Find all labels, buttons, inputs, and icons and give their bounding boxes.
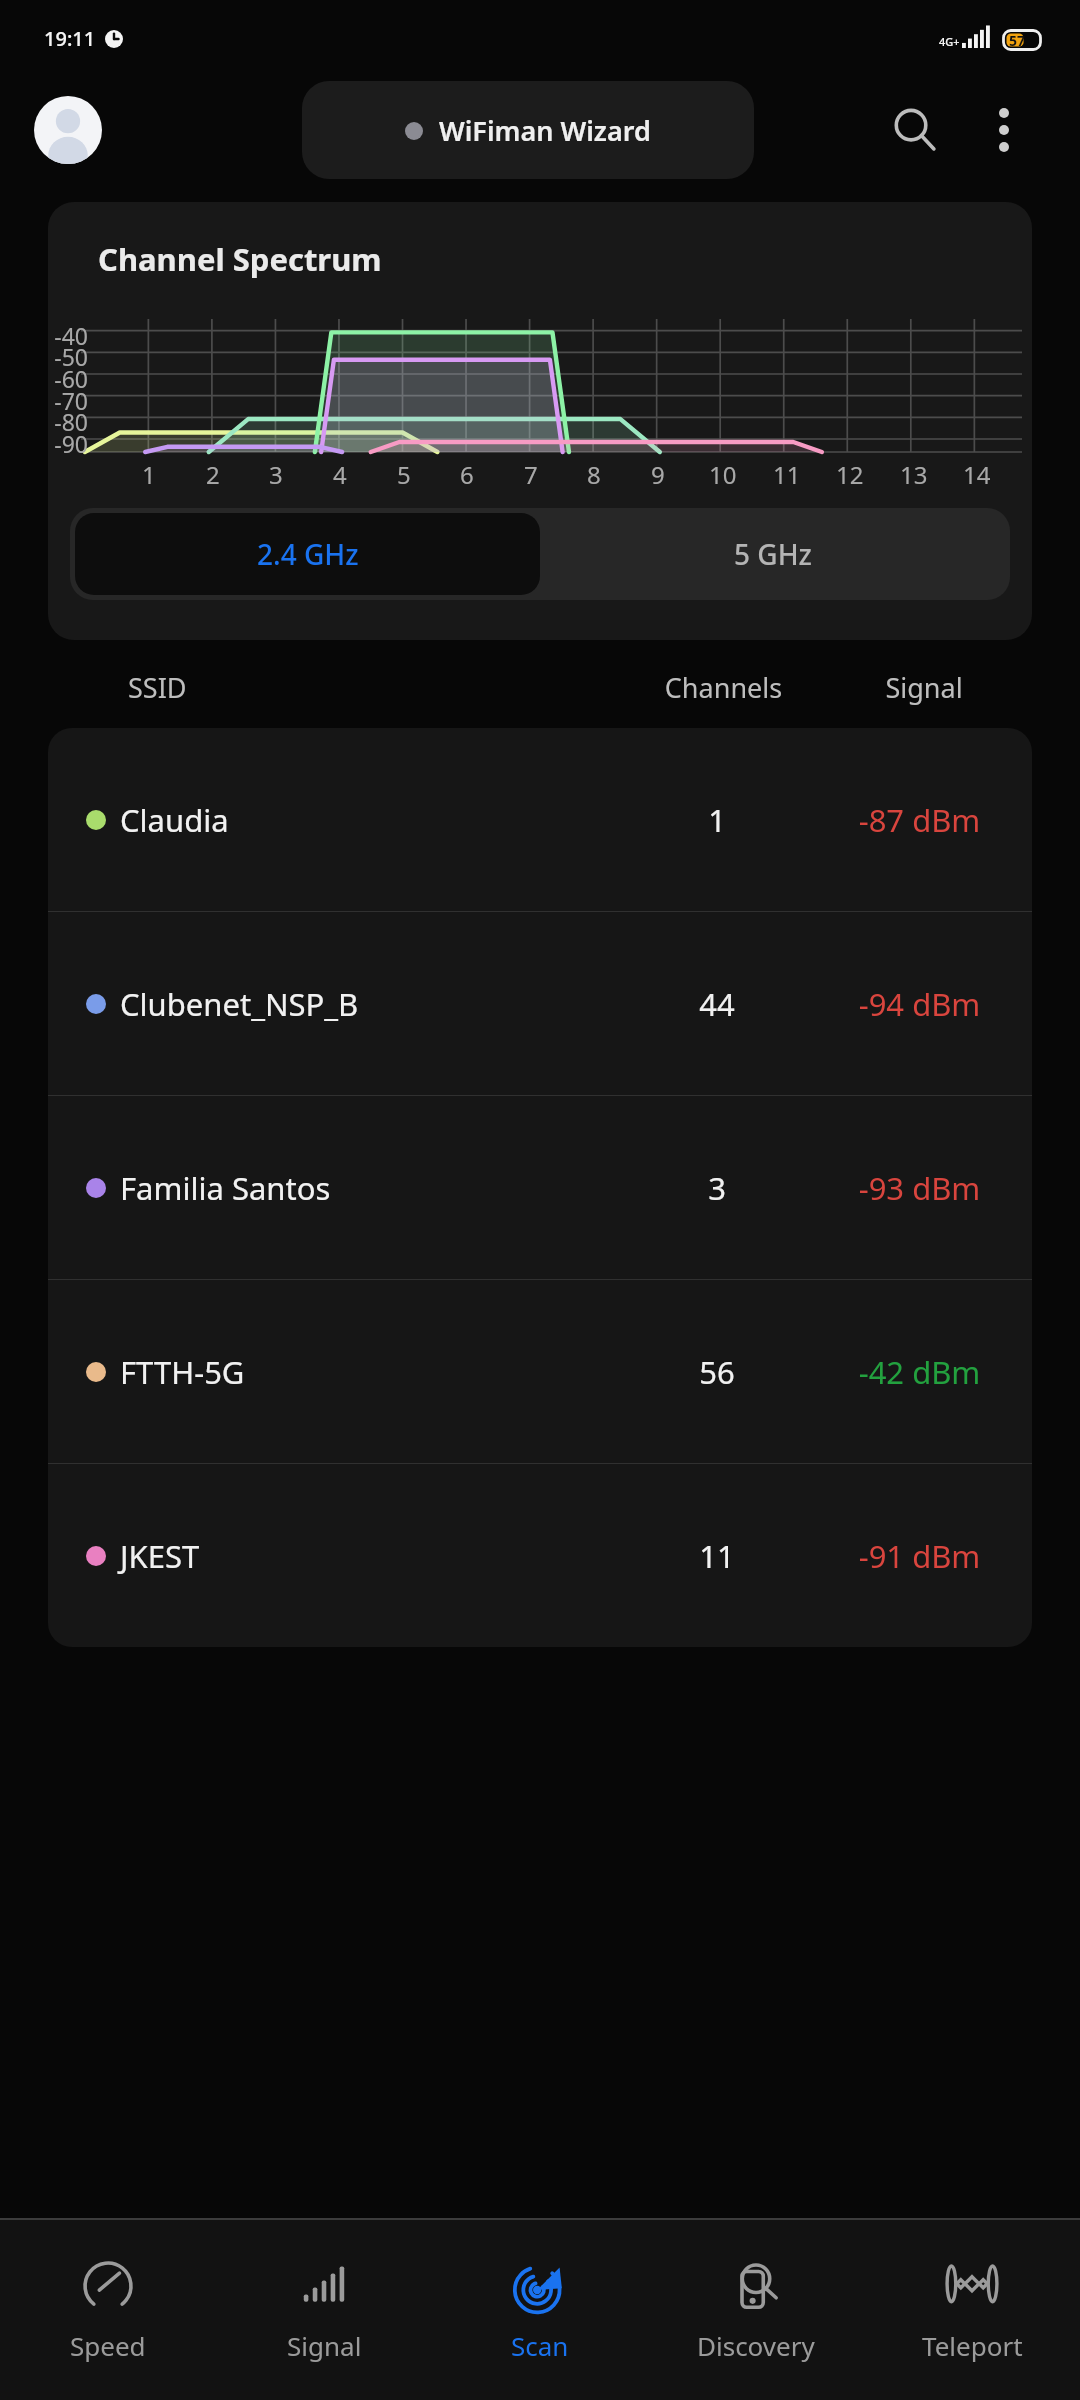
staticText: 56 <box>617 1351 817 1393</box>
staticText: 10 <box>709 458 737 491</box>
button[interactable]: Speed <box>0 2220 216 2400</box>
staticText: 1 <box>142 458 156 491</box>
button[interactable]: Familia Santos <box>48 1096 1032 1279</box>
staticText: 14 <box>963 458 991 491</box>
staticText: 19:11 <box>44 25 96 52</box>
staticText: Discovery <box>697 2328 815 2363</box>
staticText: 4G+ <box>939 34 960 49</box>
staticText: FTTH-5G <box>120 1351 245 1393</box>
staticText: -42 dBm <box>817 1351 1022 1393</box>
staticText: Channels <box>621 669 826 706</box>
staticText: Channel Spectrum <box>98 238 382 280</box>
staticText: WiFiman Wizard <box>439 112 651 149</box>
button[interactable]: Signal <box>216 2220 432 2400</box>
staticText: 7 <box>524 458 538 491</box>
button[interactable]: 5 GHz <box>540 513 1005 595</box>
staticText: 2.4 GHz <box>257 535 359 573</box>
staticText: 4 <box>333 458 347 491</box>
staticText: Clubenet_NSP_B <box>120 983 359 1025</box>
staticText: 12 <box>836 458 864 491</box>
staticText: Signal <box>287 2328 362 2363</box>
staticText: -94 dBm <box>817 983 1022 1025</box>
staticText: -50 <box>54 341 88 372</box>
staticText: SSID <box>128 669 187 706</box>
staticText: 3 <box>617 1167 817 1209</box>
staticText: 44 <box>617 983 817 1025</box>
staticText: 11 <box>773 458 801 491</box>
staticText: 8 <box>587 458 601 491</box>
staticText: 57 <box>1009 31 1026 50</box>
button[interactable]: Claudia <box>48 728 1032 911</box>
button[interactable]: 2.4 GHz <box>75 513 540 595</box>
staticText: Teleport <box>922 2328 1023 2363</box>
staticText: -40 <box>54 320 88 351</box>
staticText: -87 dBm <box>817 799 1022 841</box>
staticText: Signal <box>826 669 1022 706</box>
staticText: 1 <box>617 799 817 841</box>
button[interactable]: Clubenet_NSP_B <box>48 912 1032 1095</box>
button[interactable]: FTTH-5G <box>48 1280 1032 1463</box>
staticText: -80 <box>54 406 88 437</box>
staticText: -93 dBm <box>817 1167 1022 1209</box>
staticText: -90 <box>54 428 88 459</box>
button[interactable]: Scan <box>432 2220 648 2400</box>
staticText: Speed <box>70 2328 146 2363</box>
staticText: -60 <box>54 363 88 394</box>
button[interactable]: JKEST <box>48 1464 1032 1647</box>
button[interactable]: Profile <box>34 96 102 164</box>
button[interactable]: Search <box>878 93 952 167</box>
staticText: 5 GHz <box>734 535 812 573</box>
button[interactable]: More options <box>970 96 1038 164</box>
button[interactable]: WiFiman Wizard <box>302 81 754 179</box>
staticText: 2 <box>206 458 220 491</box>
staticText: -70 <box>54 385 88 416</box>
button[interactable]: Teleport <box>864 2220 1080 2400</box>
staticText: 11 <box>617 1535 817 1577</box>
staticText: 5 <box>397 458 411 491</box>
staticText: -91 dBm <box>817 1535 1022 1577</box>
staticText: 6 <box>460 458 474 491</box>
staticText: 3 <box>269 458 283 491</box>
button[interactable]: Discovery <box>648 2220 864 2400</box>
staticText: Familia Santos <box>120 1167 331 1209</box>
staticText: Scan <box>511 2328 569 2363</box>
staticText: Claudia <box>120 799 229 841</box>
staticText: 9 <box>651 458 665 491</box>
staticText: JKEST <box>120 1535 200 1577</box>
staticText: 13 <box>900 458 928 491</box>
